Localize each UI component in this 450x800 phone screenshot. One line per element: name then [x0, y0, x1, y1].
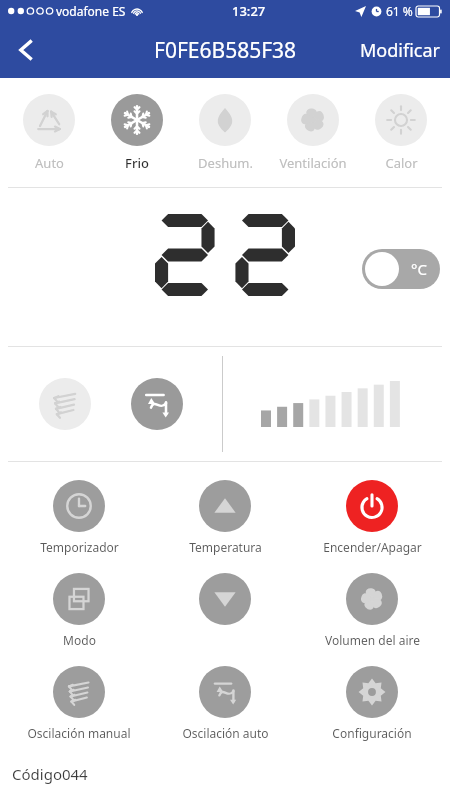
staticText: Ventilación	[279, 154, 347, 172]
staticText: Oscilación auto	[182, 725, 269, 741]
staticText: vodafone ES	[56, 3, 126, 19]
button[interactable]: Auto swing	[131, 378, 183, 430]
other: Decrease temperature	[199, 573, 251, 625]
button[interactable]: Auto	[6, 92, 92, 174]
button[interactable]: Volumen del aire	[304, 571, 440, 650]
staticText: Temporizador	[40, 539, 119, 555]
staticText: Encender/Apagar	[323, 539, 422, 555]
button[interactable]: Modo	[11, 571, 147, 650]
button[interactable]: Oscilación auto	[157, 664, 293, 743]
staticText: Configuración	[332, 725, 412, 741]
staticText: Calor	[385, 154, 418, 172]
button[interactable]: Calor	[358, 92, 444, 174]
staticText: Deshum.	[198, 154, 253, 172]
button[interactable]: Ventilación	[270, 92, 356, 174]
button[interactable]: Deshum.	[182, 92, 268, 174]
staticText: Modificar	[360, 38, 440, 63]
button[interactable]: Configuración	[304, 664, 440, 743]
button[interactable]: Back	[0, 24, 52, 76]
staticText: 13:27	[232, 2, 266, 20]
button[interactable]: Modificar	[360, 38, 440, 63]
button[interactable]: Manual swing	[39, 378, 91, 430]
button[interactable]: Celsius Fahrenheit toggle	[362, 249, 440, 289]
staticText: Oscilación manual	[27, 725, 131, 741]
button[interactable]: Frio	[94, 92, 180, 174]
staticText: Auto	[35, 154, 64, 172]
staticText: Código044	[12, 764, 88, 784]
button[interactable]: Decrease temperature	[157, 571, 293, 648]
staticText: 61 %	[386, 3, 413, 19]
staticText: Frio	[125, 154, 149, 172]
staticText: Temperatura	[189, 539, 262, 555]
staticText: °C	[411, 259, 427, 279]
button[interactable]: Encender/Apagar	[304, 478, 440, 557]
staticText: Volumen del aire	[325, 632, 420, 648]
staticText: Modo	[63, 632, 96, 648]
button[interactable]: Oscilación manual	[11, 664, 147, 743]
button[interactable]: Temperatura	[157, 478, 293, 557]
staticText: F0FE6B585F38	[154, 36, 297, 65]
button[interactable]: Temporizador	[11, 478, 147, 557]
